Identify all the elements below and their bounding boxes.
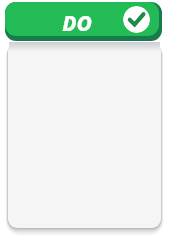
button[interactable]: Mark as done: [123, 6, 150, 33]
button[interactable]: DO: [5, 2, 162, 41]
staticText: DO: [55, 9, 99, 33]
